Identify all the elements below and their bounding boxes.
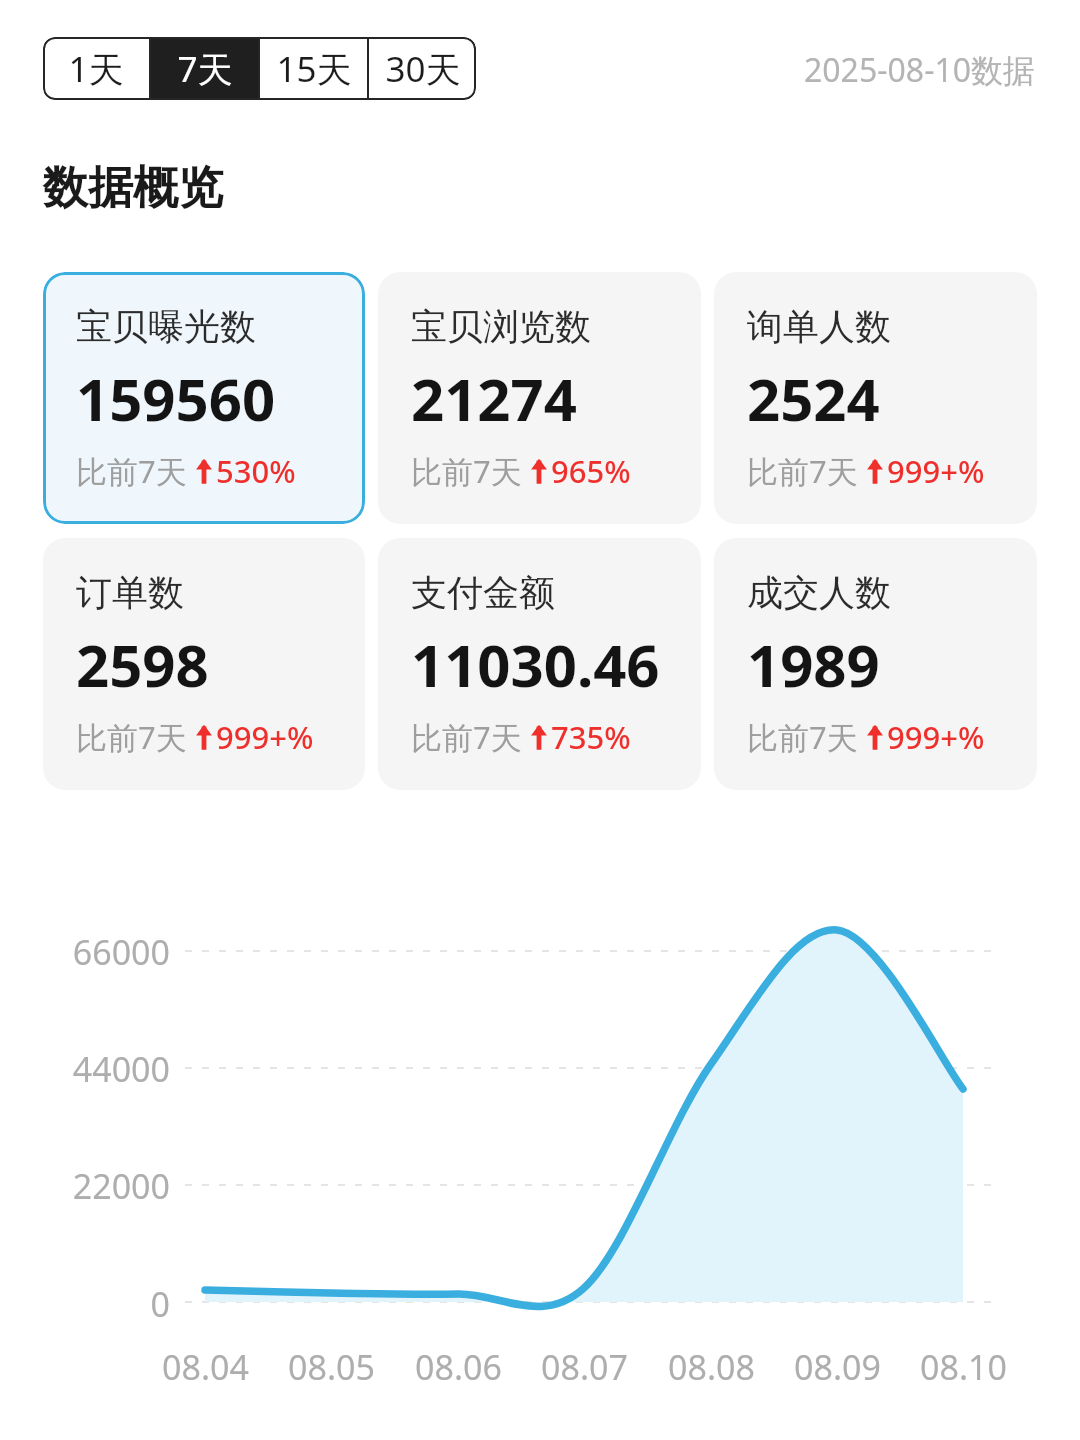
staticText: 比前7天 (411, 716, 522, 758)
staticText: 08.06 (415, 1344, 502, 1390)
staticText: 比前7天 (76, 716, 187, 758)
staticText: 22000 (72, 1163, 170, 1209)
button[interactable]: 询单人数 (714, 272, 1037, 524)
staticText: 宝贝曝光数 (76, 304, 256, 349)
staticText: 21274 (411, 359, 577, 438)
staticText: 0 (150, 1281, 170, 1327)
staticText: 08.05 (288, 1344, 375, 1390)
staticText: 11030.46 (411, 625, 660, 704)
staticText: 比前7天 (747, 716, 858, 758)
button[interactable]: 7天 (151, 37, 258, 100)
button[interactable]: 15天 (260, 37, 367, 100)
button[interactable]: 30天 (369, 37, 476, 100)
button[interactable]: 订单数 (43, 538, 365, 790)
staticText: 宝贝浏览数 (411, 304, 591, 349)
staticText: 30天 (385, 45, 461, 93)
staticText: 159560 (76, 359, 276, 438)
staticText: 999+% (216, 716, 314, 758)
staticText: 1天 (68, 45, 124, 93)
button[interactable]: 成交人数 (714, 538, 1037, 790)
staticText: 999+% (887, 716, 985, 758)
staticText: 订单数 (76, 570, 184, 615)
staticText: 530% (216, 450, 296, 492)
staticText: 2598 (76, 625, 209, 704)
staticText: 15天 (276, 45, 352, 93)
button[interactable]: 支付金额 (378, 538, 701, 790)
staticText: 08.10 (920, 1344, 1007, 1390)
staticText: 支付金额 (411, 570, 555, 615)
staticText: 965% (551, 450, 631, 492)
button[interactable]: 宝贝浏览数 (378, 272, 701, 524)
staticText: 2025-08-10数据 (804, 48, 1036, 92)
staticText: 1989 (747, 625, 880, 704)
staticText: 询单人数 (747, 304, 891, 349)
staticText: 比前7天 (411, 450, 522, 492)
staticText: 08.09 (794, 1344, 881, 1390)
staticText: 比前7天 (747, 450, 858, 492)
staticText: 999+% (887, 450, 985, 492)
staticText: 数据概览 (43, 160, 223, 217)
staticText: 08.08 (668, 1344, 755, 1390)
staticText: 66000 (72, 929, 170, 975)
staticText: 08.07 (541, 1344, 628, 1390)
staticText: 2524 (747, 359, 880, 438)
staticText: 735% (551, 716, 631, 758)
button[interactable]: 1天 (43, 37, 149, 100)
staticText: 44000 (72, 1046, 170, 1092)
staticText: 7天 (177, 45, 233, 93)
staticText: 比前7天 (76, 450, 187, 492)
button[interactable]: 宝贝曝光数 (43, 272, 365, 524)
staticText: 成交人数 (747, 570, 891, 615)
staticText: 08.04 (162, 1344, 249, 1390)
